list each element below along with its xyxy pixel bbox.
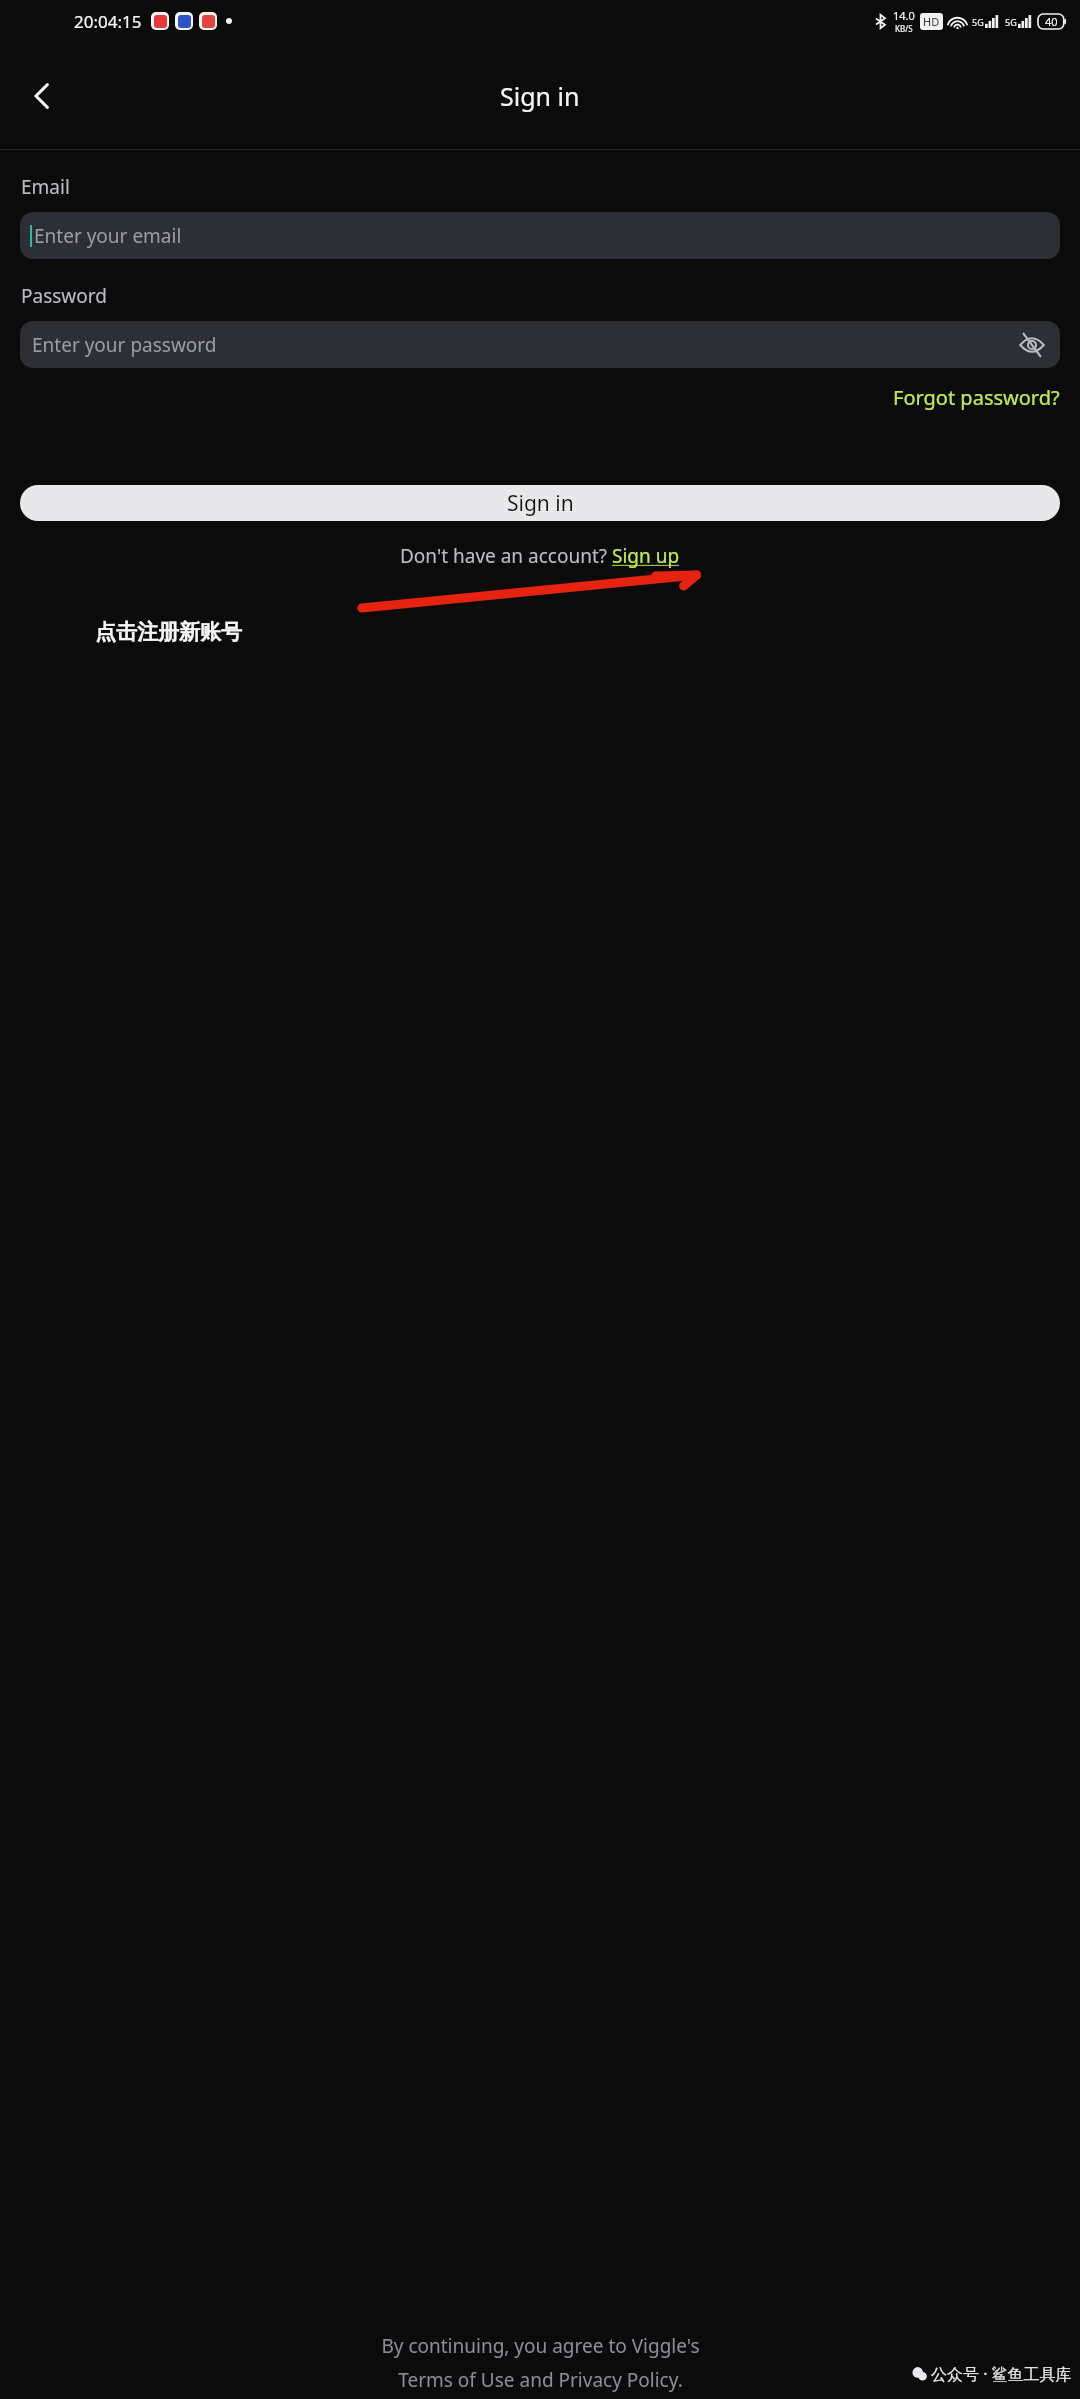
staticText: Email [21, 174, 70, 200]
staticText: 公众号 · 鲨鱼工具库 [931, 2363, 1072, 2385]
staticText: Sign up [612, 543, 680, 569]
staticText: Terms of Use and Privacy Policy. [398, 2367, 683, 2393]
button[interactable]: Back [14, 68, 70, 124]
staticText: Don't have an account? [400, 543, 612, 569]
button[interactable]: Enter your email [20, 212, 1060, 259]
button[interactable]: Sign up [612, 543, 680, 569]
button[interactable]: Forgot password? [889, 380, 1064, 415]
staticText: KB/S [895, 23, 913, 34]
staticText: Forgot password? [893, 384, 1060, 411]
staticText: Enter your password [32, 332, 217, 358]
staticText: HD [923, 14, 940, 29]
staticText: 20:04:15 [74, 10, 142, 33]
staticText: 5G [972, 16, 984, 28]
staticText: Password [21, 283, 107, 309]
staticText: Sign in [507, 489, 574, 518]
button[interactable]: Show password [1012, 325, 1052, 365]
button[interactable]: Enter your password [20, 321, 1060, 368]
staticText: By continuing, you agree to Viggle's [381, 2333, 700, 2359]
staticText: Sign in [500, 79, 580, 113]
staticText: 14.0 [893, 8, 915, 23]
staticText: Enter your email [34, 223, 182, 249]
button[interactable]: Sign in [20, 485, 1060, 521]
staticText: 5G [1005, 16, 1017, 28]
staticText: 40 [1045, 14, 1058, 29]
staticText: 点击注册新账号 [95, 619, 242, 645]
